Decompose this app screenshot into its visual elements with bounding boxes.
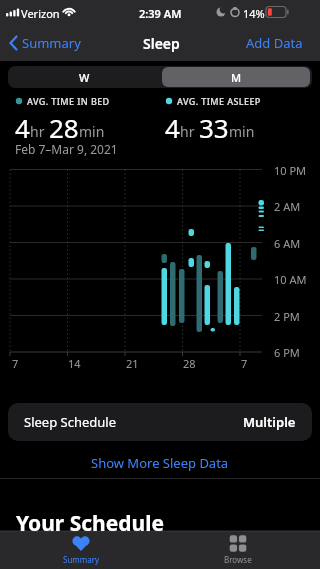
staticText: AVG. TIME ASLEEP: [177, 95, 261, 107]
staticText: 28: [49, 110, 79, 145]
button[interactable]: Add Data: [246, 30, 316, 56]
staticText: Summary: [63, 554, 100, 565]
button[interactable]: Sleep Schedule: [8, 403, 312, 441]
button[interactable]: W: [8, 66, 160, 88]
staticText: Verizon: [21, 6, 60, 21]
staticText: 14: [68, 356, 81, 371]
staticText: 28: [183, 356, 196, 371]
staticText: Feb 7–Mar 9, 2021: [15, 141, 118, 157]
staticText: 7: [241, 356, 248, 371]
staticText: Your Schedule: [16, 509, 165, 538]
staticText: 7: [12, 356, 19, 371]
staticText: 33: [199, 110, 229, 145]
button[interactable]: Browse: [213, 532, 263, 568]
staticText: hr: [30, 122, 49, 141]
staticText: min: [79, 122, 105, 141]
button[interactable]: Show More Sleep Data: [85, 453, 235, 473]
staticText: 4: [15, 110, 30, 145]
button[interactable]: Summary: [56, 532, 106, 568]
staticText: AVG. TIME IN BED: [27, 95, 110, 107]
staticText: Browse: [224, 554, 252, 565]
staticText: W: [79, 70, 90, 85]
staticText: 6 AM: [274, 236, 301, 251]
staticText: Summary: [22, 34, 81, 52]
button[interactable]: M: [162, 67, 310, 87]
staticText: 21: [126, 356, 139, 371]
staticText: Show More Sleep Data: [91, 454, 229, 472]
staticText: 2 AM: [274, 199, 301, 214]
button[interactable]: Summary: [6, 30, 82, 56]
staticText: Sleep Schedule: [24, 413, 116, 431]
staticText: 10 PM: [274, 163, 307, 178]
staticText: 10 AM: [274, 272, 307, 287]
staticText: min: [229, 122, 255, 141]
staticText: 14%: [243, 6, 265, 21]
staticText: 2 PM: [274, 309, 300, 324]
staticText: 2:39 AM: [139, 6, 182, 21]
staticText: 6 PM: [274, 345, 300, 360]
staticText: 4: [165, 110, 180, 145]
staticText: Sleep: [143, 34, 180, 53]
staticText: M: [231, 70, 242, 85]
staticText: Multiple: [243, 413, 296, 431]
staticText: Add Data: [246, 34, 303, 52]
staticText: hr: [180, 122, 199, 141]
